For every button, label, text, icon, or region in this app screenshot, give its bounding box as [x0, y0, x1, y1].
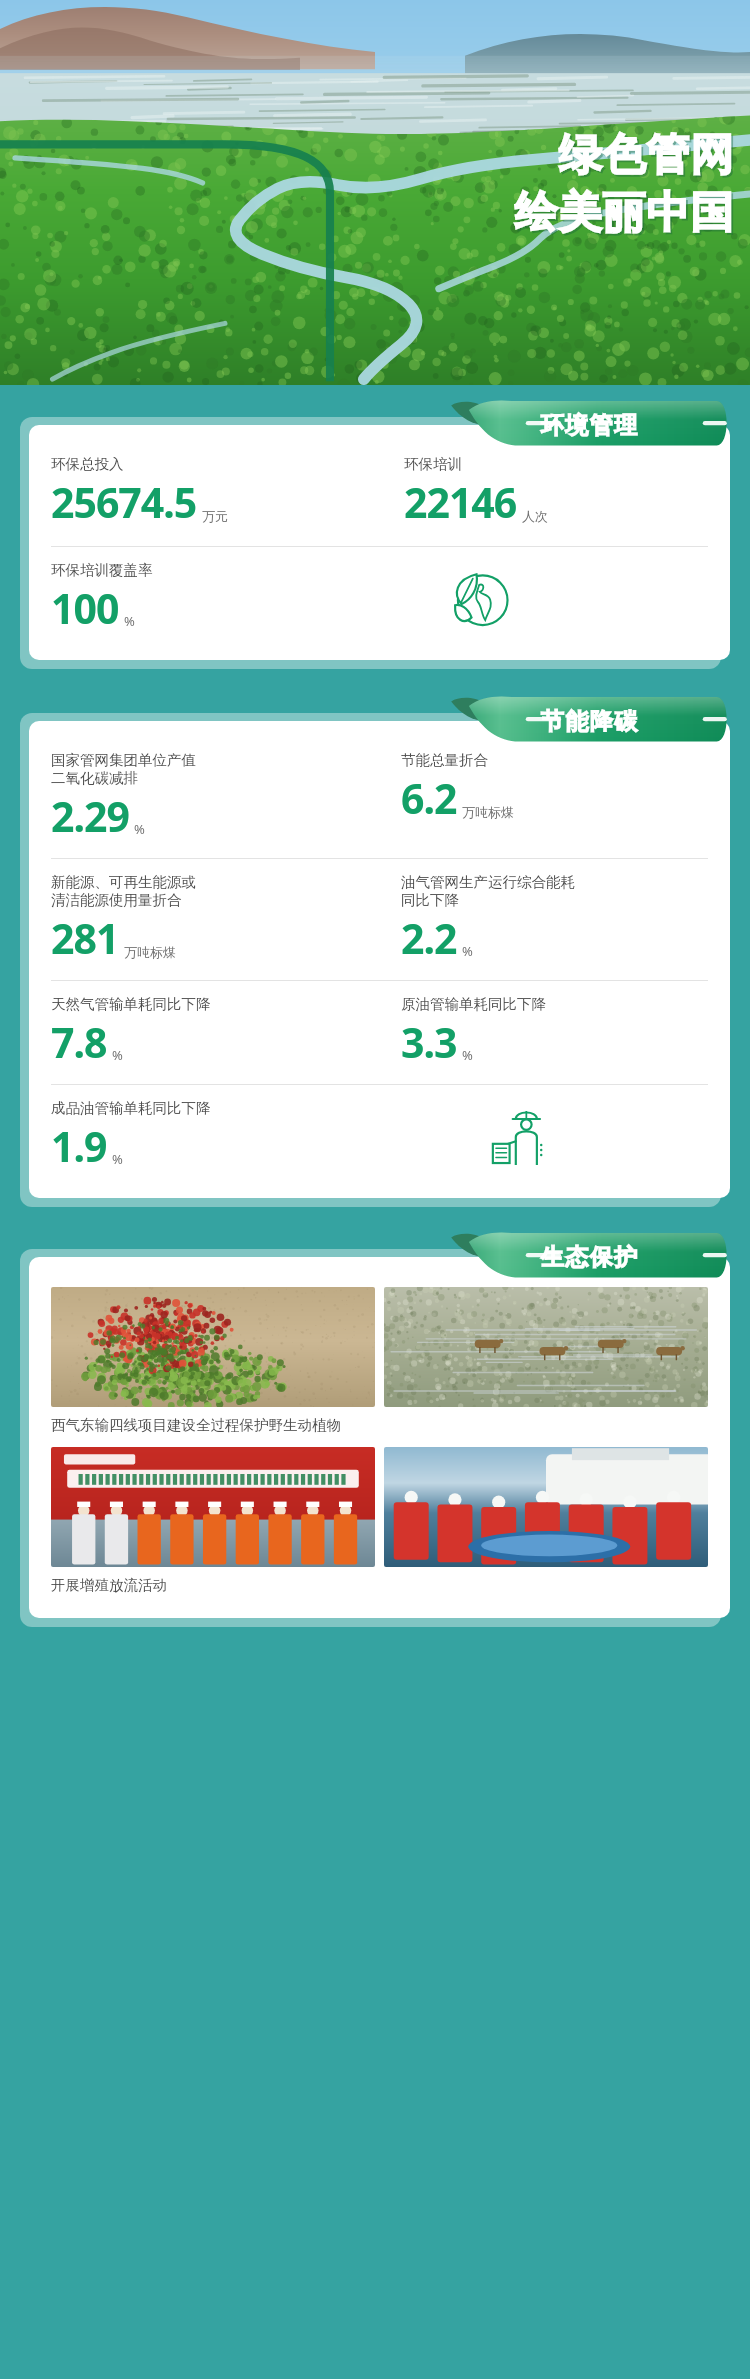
- button[interactable]: Eco globe: [448, 568, 510, 630]
- staticText: 国家管网集团单位产值: [51, 751, 196, 769]
- staticText: %: [124, 612, 135, 630]
- staticText: 环保总投入: [51, 455, 124, 473]
- staticText: 生态保护: [540, 1243, 638, 1272]
- staticText: 原油管输单耗同比下降: [401, 995, 546, 1013]
- staticText: 万吨标煤: [462, 804, 514, 820]
- staticText: 绘美丽中国: [516, 188, 736, 242]
- staticText: 新能源、可再生能源或: [51, 873, 196, 891]
- staticText: 成品油管输单耗同比下降: [51, 1099, 211, 1117]
- staticText: 万元: [202, 508, 228, 524]
- staticText: 2.2: [401, 910, 457, 966]
- staticText: 6.2: [401, 770, 457, 826]
- button[interactable]: [51, 1287, 375, 1407]
- button[interactable]: Energy saving worker: [491, 1106, 553, 1168]
- staticText: 绿色管网: [560, 130, 736, 184]
- staticText: 环境管理: [540, 411, 638, 440]
- staticText: 清洁能源使用量折合: [51, 891, 182, 909]
- staticText: 天然气管输单耗同比下降: [51, 995, 211, 1013]
- staticText: 1.9: [51, 1118, 107, 1174]
- staticText: 西气东输四线项目建设全过程保护野生动植物: [51, 1416, 341, 1434]
- staticText: %: [134, 820, 145, 838]
- staticText: 3.3: [401, 1014, 457, 1070]
- staticText: 环保培训: [404, 455, 462, 473]
- staticText: 绿色管网: [558, 128, 734, 182]
- staticText: 二氧化碳减排: [51, 769, 138, 787]
- staticText: 2.29: [51, 788, 129, 844]
- staticText: 节能总量折合: [401, 751, 488, 769]
- staticText: %: [112, 1046, 123, 1064]
- staticText: %: [462, 942, 473, 960]
- staticText: 开展增殖放流活动: [51, 1576, 167, 1594]
- staticText: 绘美丽中国: [514, 186, 734, 240]
- button[interactable]: 生态保护: [435, 1227, 730, 1287]
- staticText: 环保培训覆盖率: [51, 561, 153, 579]
- staticText: 万吨标煤: [124, 944, 176, 960]
- staticText: 油气管网生产运行综合能耗: [401, 873, 575, 891]
- staticText: %: [462, 1046, 473, 1064]
- button[interactable]: [51, 1447, 375, 1567]
- staticText: 7.8: [51, 1014, 107, 1070]
- staticText: 22146: [404, 474, 517, 530]
- staticText: 100: [51, 580, 119, 636]
- staticText: %: [112, 1150, 123, 1168]
- button[interactable]: 节能降碳: [435, 691, 730, 751]
- staticText: 25674.5: [51, 474, 197, 530]
- button[interactable]: [384, 1287, 708, 1407]
- button[interactable]: [384, 1447, 708, 1567]
- staticText: 同比下降: [401, 891, 459, 909]
- staticText: 281: [51, 910, 119, 966]
- staticText: 人次: [522, 508, 548, 524]
- staticText: 节能降碳: [540, 707, 638, 736]
- button[interactable]: 环境管理: [435, 395, 730, 455]
